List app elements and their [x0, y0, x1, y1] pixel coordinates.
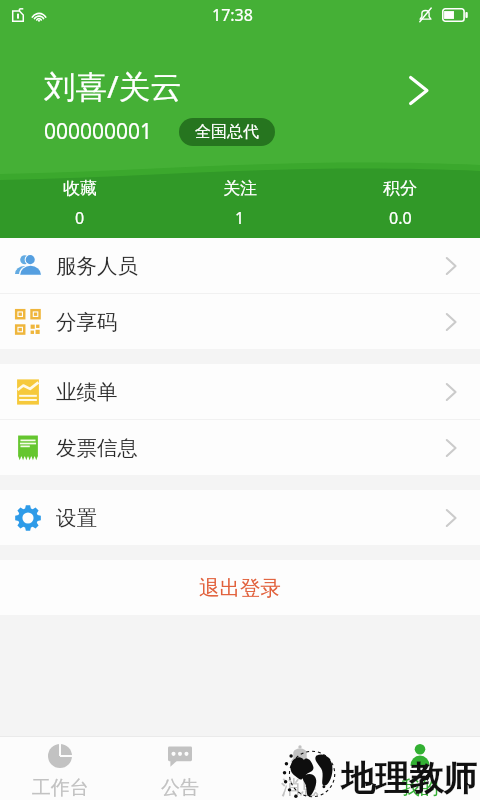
button[interactable]: 业绩单 — [0, 364, 480, 419]
staticText: 0 — [75, 207, 85, 229]
button[interactable]: 退出登录 — [0, 560, 480, 615]
staticText: 17:38 — [212, 4, 253, 26]
button[interactable]: 工作台 — [0, 736, 120, 800]
other: 查看个人资料 — [408, 75, 430, 106]
staticText: 消息 — [281, 776, 319, 800]
button[interactable]: 收藏 — [0, 170, 160, 231]
staticText: 1 — [235, 207, 245, 229]
staticText: 全国总代 — [195, 122, 259, 142]
staticText: 业绩单 — [56, 379, 118, 405]
button[interactable]: 分享码 — [0, 294, 480, 349]
staticText: 地理教师 — [341, 757, 477, 800]
button[interactable]: 关注 — [160, 170, 320, 231]
staticText: 关注 — [223, 178, 257, 199]
button[interactable]: 设置 — [0, 490, 480, 545]
button[interactable]: 消息 — [240, 736, 360, 800]
staticText: 分享码 — [56, 309, 118, 335]
staticText: 退出登录 — [199, 575, 281, 601]
staticText: 工作台 — [32, 776, 89, 800]
staticText: 设置 — [56, 505, 97, 531]
staticText: 公告 — [161, 776, 199, 800]
button[interactable]: 发票信息 — [0, 420, 480, 475]
staticText: 积分 — [383, 178, 417, 199]
button[interactable]: 服务人员 — [0, 238, 480, 293]
staticText: 000000001 — [44, 117, 153, 146]
staticText: 刘喜/关云 — [44, 64, 182, 107]
button[interactable]: 刘喜/关云 — [0, 64, 480, 146]
staticText: 收藏 — [63, 178, 97, 199]
staticText: 服务人员 — [56, 253, 138, 279]
staticText: 我的 — [401, 776, 439, 800]
button[interactable]: 我的 — [360, 736, 480, 800]
staticText: 0.0 — [389, 207, 412, 229]
staticText: 发票信息 — [56, 435, 138, 461]
button[interactable]: 公告 — [120, 736, 240, 800]
button[interactable]: 积分 — [320, 170, 480, 231]
